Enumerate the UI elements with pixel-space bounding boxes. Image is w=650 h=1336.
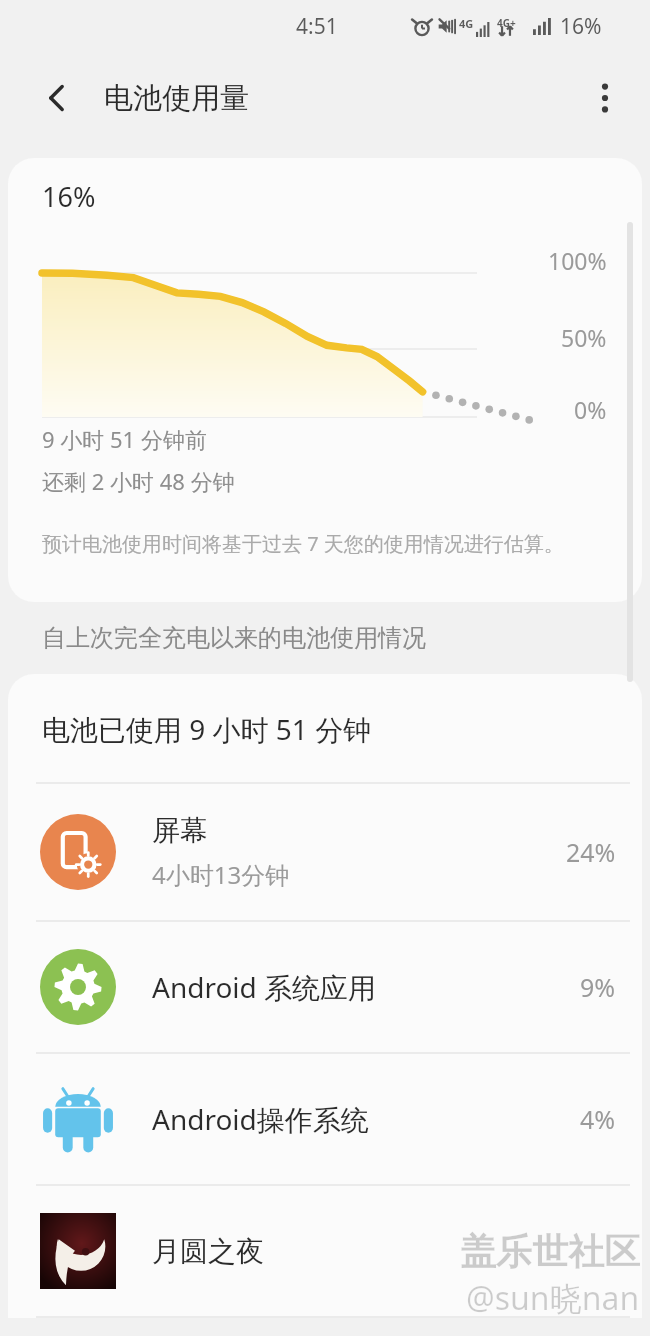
staticText: 9 小时 51 分钟前	[42, 424, 207, 454]
staticText: 盖乐世社区	[460, 1229, 640, 1274]
staticText: Android操作系统	[152, 1100, 369, 1138]
staticText: @sun晓nan	[466, 1276, 640, 1320]
staticText: 4G+	[497, 16, 516, 30]
staticText: 电池已使用 9 小时 51 分钟	[42, 710, 372, 748]
staticText: 4:51	[296, 12, 338, 41]
staticText: 16%	[560, 12, 602, 41]
staticText: 24%	[566, 835, 616, 869]
button[interactable]: 16%	[8, 158, 642, 602]
staticText: 预计电池使用时间将基于过去 7 天您的使用情况进行估算。	[42, 530, 587, 557]
staticText: 4小时13分钟	[152, 858, 290, 891]
button[interactable]: Back	[28, 69, 86, 127]
staticText: 月圆之夜	[152, 1234, 264, 1269]
button[interactable]: More options	[576, 69, 634, 127]
staticText: 0%	[574, 394, 607, 425]
staticText: Android 系统应用	[152, 968, 377, 1006]
staticText: 电池使用量	[104, 80, 249, 117]
staticText: 9%	[580, 970, 616, 1004]
staticText: 16%	[42, 178, 96, 215]
staticText: 屏幕	[152, 813, 208, 848]
staticText: 还剩 2 小时 48 分钟	[42, 466, 235, 496]
staticText: 50%	[561, 322, 607, 353]
button[interactable]: 屏幕	[8, 784, 642, 920]
button[interactable]: Android操作系统	[8, 1054, 642, 1184]
staticText: 4%	[580, 1102, 616, 1136]
staticText: 100%	[548, 245, 607, 276]
staticText: 4G	[459, 16, 474, 31]
staticText: 自上次完全充电以来的电池使用情况	[42, 623, 426, 653]
button[interactable]: 月圆之夜	[8, 1186, 642, 1316]
button[interactable]: Android 系统应用	[8, 922, 642, 1052]
